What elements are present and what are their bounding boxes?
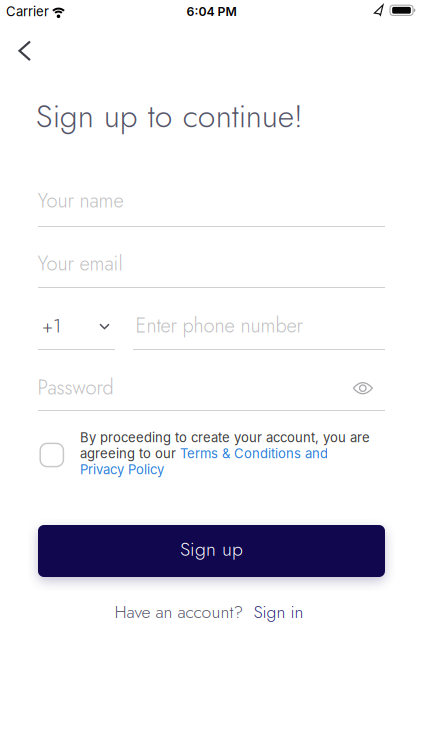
staticText: Sign in xyxy=(253,599,303,625)
staticText: Privacy Policy xyxy=(80,462,164,477)
staticText: Carrier xyxy=(6,4,49,19)
button[interactable]: +1 xyxy=(38,311,115,341)
button[interactable]: Terms & Conditions and xyxy=(180,446,328,461)
button[interactable] xyxy=(352,380,374,396)
staticText: Terms & Conditions and xyxy=(180,446,328,461)
staticText: Enter phone number xyxy=(135,311,302,340)
button[interactable] xyxy=(40,443,63,467)
staticText: Sign up to continue! xyxy=(36,93,303,139)
staticText: Your email xyxy=(37,249,122,278)
staticText: Password xyxy=(37,373,113,402)
staticText: Sign up xyxy=(180,535,243,563)
button[interactable]: Sign in xyxy=(253,599,303,625)
staticText: By proceeding to create your account, yo… xyxy=(80,430,370,445)
button[interactable]: Privacy Policy xyxy=(80,462,164,477)
staticText: +1 xyxy=(42,312,61,340)
button[interactable]: Sign up xyxy=(38,525,385,577)
staticText: Have an account? xyxy=(114,599,243,625)
staticText: 6:04 PM xyxy=(186,4,236,19)
staticText: Your name xyxy=(37,186,123,215)
staticText: agreeing to our xyxy=(80,446,180,461)
button[interactable] xyxy=(18,40,31,61)
